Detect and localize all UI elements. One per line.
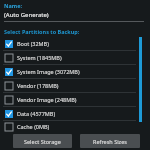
staticText: Select Storage <box>24 138 61 145</box>
button[interactable]: Checked <box>0 107 150 120</box>
staticText: Data (4577MB) <box>17 110 56 117</box>
button[interactable]: Refresh Sizes <box>80 134 140 148</box>
staticText: Cache (0MB) <box>17 123 50 130</box>
button[interactable]: Unchecked <box>0 79 150 92</box>
button[interactable]: Unchecked <box>0 121 150 132</box>
button[interactable]: Select Storage <box>13 134 72 148</box>
staticText: System Image (3072MB) <box>17 68 80 75</box>
staticText: Vendor (178MB) <box>17 82 59 89</box>
staticText: Boot (32MB) <box>17 40 49 47</box>
staticText: Name: <box>4 2 22 9</box>
other: Unchecked <box>5 96 13 104</box>
other: Checked <box>5 40 13 48</box>
staticText: (Auto Generate) <box>4 11 49 19</box>
other: Checked <box>5 110 13 118</box>
button[interactable]: Unchecked <box>0 93 150 106</box>
button[interactable]: Checked <box>0 37 150 50</box>
button[interactable]: Unchecked <box>0 51 150 64</box>
button[interactable]: Checked <box>0 65 150 78</box>
staticText: Select Partitions to Backup: <box>4 28 80 35</box>
other: Checked <box>5 68 13 76</box>
other: Unchecked <box>5 82 13 90</box>
staticText: System (1845MB) <box>17 54 62 61</box>
other: Unchecked <box>5 123 13 131</box>
other: Unchecked <box>5 54 13 62</box>
button[interactable]: (Auto Generate) <box>4 11 144 22</box>
staticText: Vendor Image (248MB) <box>17 96 77 103</box>
staticText: Refresh Sizes <box>93 138 127 145</box>
